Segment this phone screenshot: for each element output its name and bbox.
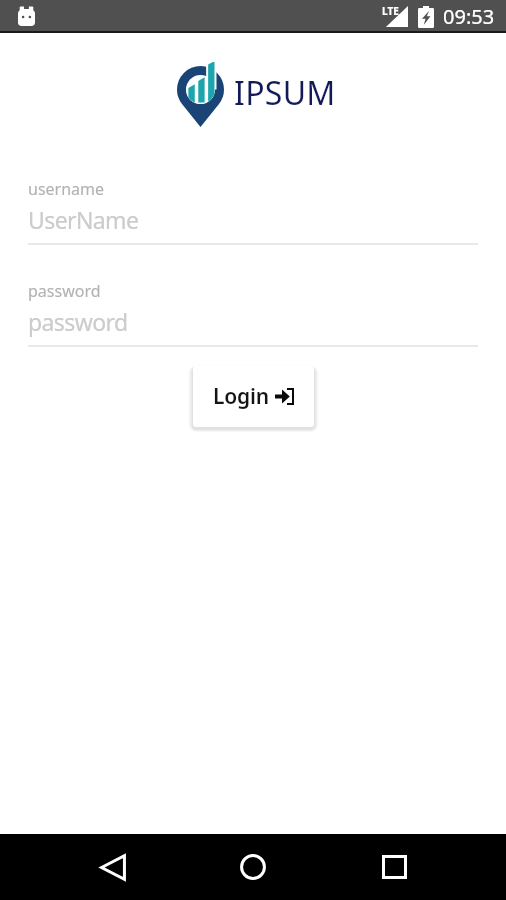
staticText: 09:53 xyxy=(443,3,495,30)
staticText: password xyxy=(28,306,128,337)
button[interactable]: Login xyxy=(193,366,314,427)
button[interactable]: Recents xyxy=(370,843,418,891)
button[interactable]: Home xyxy=(229,843,277,891)
staticText: Login xyxy=(213,382,269,411)
staticText: UserName xyxy=(28,204,139,235)
button[interactable]: Back xyxy=(89,843,137,891)
staticText: password xyxy=(28,280,101,302)
staticText: IPSUM xyxy=(234,71,336,115)
staticText: LTE xyxy=(382,4,399,18)
staticText: username xyxy=(28,178,105,200)
